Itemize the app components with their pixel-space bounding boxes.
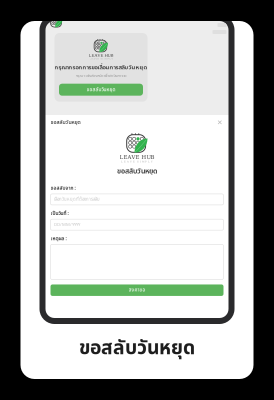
staticText: DD/MM/YYYY xyxy=(54,221,80,228)
staticText: ขอสลับวันหยุด xyxy=(86,86,115,93)
staticText: เลือกวันหยุดที่ต้องการสลับ xyxy=(54,196,100,203)
button[interactable]: Close xyxy=(215,118,224,127)
button[interactable]: ส่งคำขอ xyxy=(50,284,223,296)
staticText: ขอสลับวันหยุด xyxy=(79,334,195,363)
button[interactable]: ขอสลับวันหยุด xyxy=(59,84,143,96)
staticText: ส่งคำขอ xyxy=(128,287,145,294)
staticText: L E A V E S I M P L Y xyxy=(89,58,112,60)
staticText: LEAVE HUB xyxy=(119,154,154,160)
staticText: L E A V E S I M P L Y xyxy=(121,160,153,163)
staticText: ขอสลับวันหยุด xyxy=(50,119,80,126)
staticText: กรุณากรอกการขอเลื่อนการสลับวันหยุด xyxy=(54,63,147,72)
staticText: เหตุผล : xyxy=(50,235,66,242)
staticText: เป็นวันที่ : xyxy=(50,210,68,217)
staticText: ขอสลับวันหยุด xyxy=(117,166,157,177)
staticText: LEAVE HUB xyxy=(88,53,113,58)
staticText: ✕ xyxy=(217,119,223,126)
staticText: กรุณาแจ้งล่วงหน้าเพื่อคำนึงการจะ xyxy=(75,73,126,79)
staticText: ขอสลับจาก : xyxy=(50,185,75,192)
